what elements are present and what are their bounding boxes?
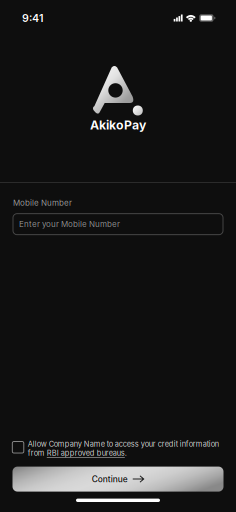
staticText: Mobile Number bbox=[13, 198, 72, 208]
staticText: Enter your Mobile Number bbox=[19, 219, 120, 229]
staticText: Continue bbox=[92, 474, 128, 484]
staticText: 9:41 bbox=[22, 11, 44, 24]
button[interactable]: Continue bbox=[0, 467, 236, 492]
staticText: Allow Company Name to access your credit… bbox=[28, 439, 219, 458]
button[interactable]: Allow Company Name to access your credit… bbox=[0, 435, 236, 458]
staticText: AkikoPay bbox=[90, 117, 146, 132]
